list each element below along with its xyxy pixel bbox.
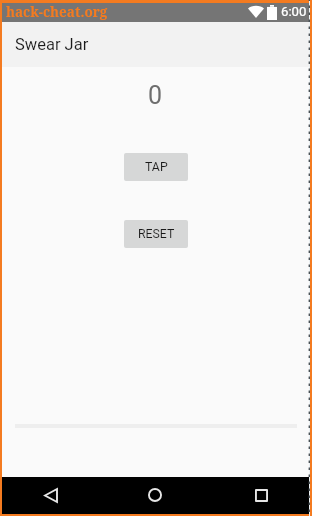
staticText: TAP [145,160,168,174]
staticText: Swear Jar [15,35,89,54]
button[interactable]: Back [31,480,71,510]
button[interactable]: Home [135,480,175,510]
button[interactable]: Recent apps [241,480,281,510]
other: Wi-Fi signal [248,5,264,18]
button[interactable]: RESET [124,220,188,248]
button[interactable]: TAP [124,153,188,181]
staticText: 0 [148,81,163,110]
staticText: 6:00 [281,4,307,19]
other: Battery [267,5,277,20]
staticText: RESET [138,227,175,241]
staticText: hack-cheat.org [6,3,108,21]
